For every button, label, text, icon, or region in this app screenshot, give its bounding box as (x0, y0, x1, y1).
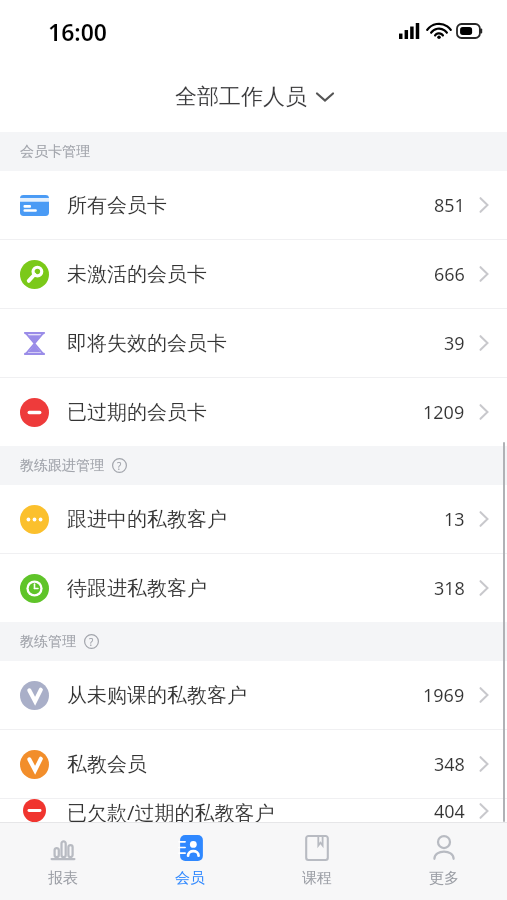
button[interactable]: 帮助 (112, 458, 127, 473)
staticText: 会员 (175, 869, 205, 888)
button[interactable]: 即将失效的会员卡 (0, 309, 507, 377)
button[interactable]: 待跟进私教客户 (0, 554, 507, 622)
staticText: 348 (434, 752, 465, 777)
staticText: 私教会员 (67, 752, 434, 777)
staticText: 教练跟进管理 (20, 457, 104, 475)
staticText: 课程 (302, 869, 332, 888)
staticText: 所有会员卡 (67, 193, 434, 218)
other: 更多 (429, 833, 459, 863)
staticText: ? (89, 635, 94, 649)
staticText: 更多 (429, 869, 459, 888)
staticText: 跟进中的私教客户 (67, 507, 444, 532)
other: 会员 (175, 833, 205, 863)
button[interactable]: 从未购课的私教客户 (0, 661, 507, 729)
staticText: 已过期的会员卡 (67, 400, 423, 425)
button[interactable]: 已欠款/过期的私教客户 (0, 799, 507, 822)
staticText: 会员卡管理 (20, 143, 90, 161)
button[interactable]: 更多 (380, 823, 507, 900)
button[interactable]: 报表 (0, 823, 126, 900)
staticText: 1969 (423, 683, 465, 708)
staticText: 已欠款/过期的私教客户 (67, 799, 434, 822)
button[interactable]: 帮助 (84, 634, 99, 649)
staticText: 318 (434, 576, 465, 601)
staticText: 1209 (423, 400, 465, 425)
staticText: 教练管理 (20, 633, 76, 651)
button[interactable]: 会员 (126, 823, 253, 900)
button[interactable]: 已过期的会员卡 (0, 378, 507, 446)
button[interactable]: 私教会员 (0, 730, 507, 798)
button[interactable]: 全部工作人员 (0, 62, 507, 132)
other: 报表 (48, 833, 78, 863)
staticText: 13 (444, 507, 465, 532)
staticText: 851 (434, 193, 465, 218)
button[interactable]: 课程 (253, 823, 380, 900)
staticText: 即将失效的会员卡 (67, 331, 444, 356)
staticText: 39 (444, 331, 465, 356)
staticText: 666 (434, 262, 465, 287)
staticText: 未激活的会员卡 (67, 262, 434, 287)
button[interactable]: 跟进中的私教客户 (0, 485, 507, 553)
staticText: 16:00 (48, 16, 107, 47)
button[interactable]: 所有会员卡 (0, 171, 507, 239)
staticText: 404 (434, 799, 465, 822)
button[interactable]: 未激活的会员卡 (0, 240, 507, 308)
other: 课程 (302, 833, 332, 863)
staticText: 报表 (48, 869, 78, 888)
staticText: 待跟进私教客户 (67, 576, 434, 601)
staticText: 从未购课的私教客户 (67, 683, 423, 708)
staticText: 全部工作人员 (175, 83, 307, 111)
staticText: ? (117, 459, 122, 473)
